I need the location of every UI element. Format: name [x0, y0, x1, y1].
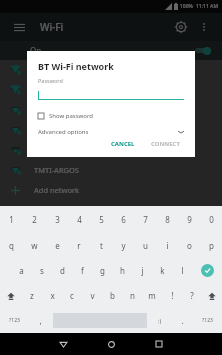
- button[interactable]: .: [171, 308, 193, 333]
- button[interactable]: ?: [182, 283, 202, 308]
- button[interactable]: 8: [156, 206, 178, 232]
- button[interactable]: Shift: [0, 283, 21, 308]
- button[interactable]: On: [0, 41, 222, 60]
- button[interactable]: u: [134, 232, 156, 258]
- staticText: Show password: [49, 112, 93, 120]
- button[interactable]: Navigation menu: [10, 18, 28, 36]
- staticText: Network one: [34, 65, 80, 75]
- staticText: 4: [77, 214, 82, 225]
- staticText: 3: [55, 214, 60, 225]
- button[interactable]: l: [172, 258, 192, 283]
- staticText: Password: [38, 77, 63, 84]
- staticText: 100%: [180, 3, 193, 10]
- staticText: !: [171, 290, 174, 301]
- button[interactable]: Network two: [0, 80, 222, 100]
- staticText: Network three: [34, 105, 85, 115]
- staticText: t: [100, 240, 103, 251]
- staticText: e: [55, 240, 60, 251]
- button[interactable]: Network one: [0, 60, 222, 80]
- button[interactable]: 5: [90, 206, 112, 232]
- staticText: ?123: [202, 317, 213, 324]
- button[interactable]: y: [112, 232, 134, 258]
- button[interactable]: Network three: [0, 100, 222, 120]
- button[interactable]: o: [178, 232, 200, 258]
- staticText: 8: [165, 214, 170, 225]
- button[interactable]: 6: [112, 206, 134, 232]
- button[interactable]: Home: [96, 333, 126, 355]
- staticText: b: [110, 290, 115, 301]
- button[interactable]: ?123: [0, 308, 29, 333]
- button[interactable]: v: [82, 283, 102, 308]
- staticText: u: [143, 240, 148, 251]
- staticText: Add network: [34, 185, 80, 195]
- button[interactable]: z: [21, 283, 42, 308]
- staticText: CANCEL: [111, 140, 135, 148]
- button[interactable]: w: [23, 232, 46, 258]
- button[interactable]: Add network: [0, 180, 222, 200]
- button[interactable]: More options: [196, 19, 212, 35]
- button[interactable]: 0: [200, 206, 222, 232]
- button[interactable]: k: [152, 258, 172, 283]
- button[interactable]: 2: [23, 206, 46, 232]
- button[interactable]: ,: [29, 308, 51, 333]
- staticText: Network two: [34, 85, 80, 95]
- button[interactable]: p: [200, 232, 222, 258]
- button[interactable]: c: [62, 283, 82, 308]
- button[interactable]: i: [156, 232, 178, 258]
- button[interactable]: e: [46, 232, 68, 258]
- staticText: s: [40, 265, 44, 276]
- button[interactable]: f: [72, 258, 92, 283]
- button[interactable]: d: [52, 258, 72, 283]
- button[interactable]: 4: [68, 206, 90, 232]
- button[interactable]: Advanced options: [38, 128, 184, 136]
- staticText: 1: [9, 214, 14, 225]
- staticText: TMTI-ARGOS: [34, 165, 79, 175]
- button[interactable]: t: [90, 232, 112, 258]
- button[interactable]: Settings: [172, 18, 190, 36]
- button[interactable]: !: [162, 283, 182, 308]
- staticText: a: [19, 265, 24, 276]
- button[interactable]: Back: [48, 333, 78, 355]
- button[interactable]: Recents: [144, 333, 174, 355]
- button[interactable]: TMTI-ARGOS: [0, 160, 222, 180]
- button[interactable]: Shift: [202, 283, 222, 308]
- button[interactable]: Network four: [0, 120, 222, 140]
- staticText: 5: [99, 214, 104, 225]
- staticText: x: [50, 290, 55, 301]
- button[interactable]: CONNECT: [147, 138, 184, 150]
- staticText: j: [141, 265, 144, 276]
- button[interactable]: Network five: [0, 140, 222, 160]
- button[interactable]: j: [132, 258, 152, 283]
- staticText: ,: [39, 315, 42, 326]
- button[interactable]: s: [32, 258, 52, 283]
- staticText: ?: [190, 290, 194, 301]
- staticText: On: [30, 45, 42, 56]
- button[interactable]: b: [102, 283, 122, 308]
- button[interactable]: m: [142, 283, 162, 308]
- button[interactable]: Enter: [192, 258, 222, 283]
- button[interactable]: x: [42, 283, 62, 308]
- button[interactable]: n: [122, 283, 142, 308]
- staticText: :): [158, 317, 162, 324]
- button[interactable]: CANCEL: [107, 138, 139, 150]
- button[interactable]: 3: [46, 206, 68, 232]
- button[interactable]: 9: [178, 206, 200, 232]
- staticText: 6: [121, 214, 126, 225]
- button[interactable]: ?123: [193, 308, 222, 333]
- button[interactable]: Emoji: [149, 308, 171, 333]
- staticText: y: [121, 240, 126, 251]
- staticText: n: [130, 290, 135, 301]
- button[interactable]: Show password: [38, 112, 93, 120]
- button[interactable]: a: [11, 258, 32, 283]
- button[interactable]: 7: [134, 206, 156, 232]
- button[interactable]: q: [0, 232, 23, 258]
- button[interactable]: 1: [0, 206, 23, 232]
- staticText: m: [148, 290, 156, 301]
- staticText: ?123: [9, 317, 20, 324]
- staticText: .: [181, 315, 184, 326]
- button[interactable]: r: [68, 232, 90, 258]
- button[interactable]: h: [112, 258, 132, 283]
- button[interactable]: g: [92, 258, 112, 283]
